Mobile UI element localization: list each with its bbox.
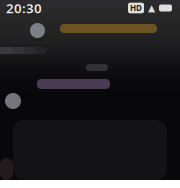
staticText: ▲ [148, 3, 155, 13]
staticText: 20:30 [6, 0, 42, 17]
staticText: HD [130, 3, 142, 13]
